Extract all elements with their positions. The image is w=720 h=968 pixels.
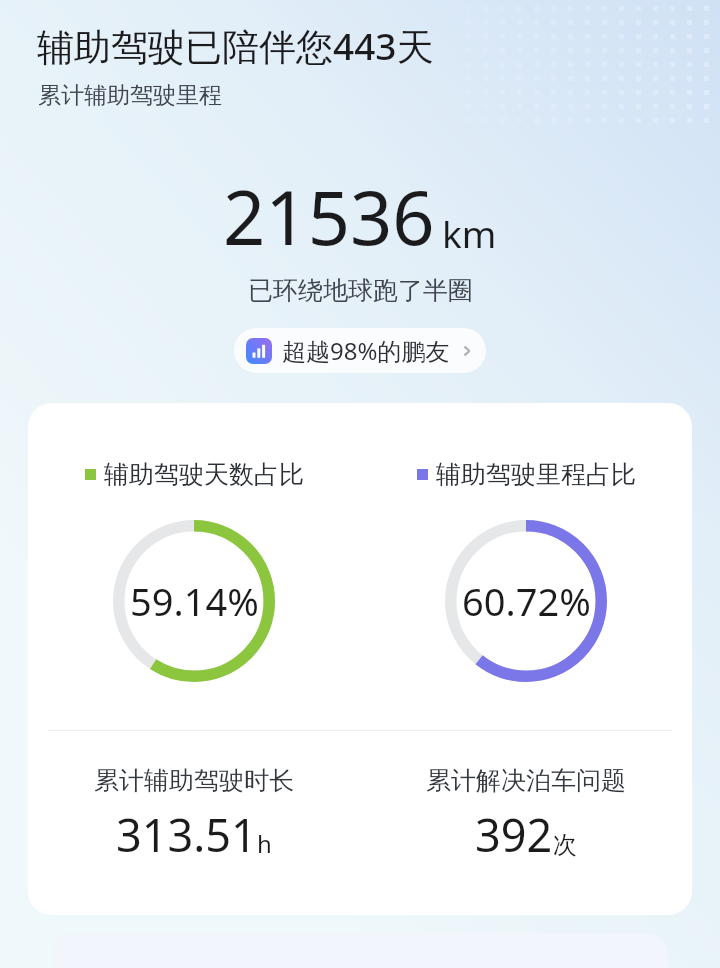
staticText: 60.72%	[462, 575, 591, 627]
staticText: 累计辅助驾驶里程	[38, 81, 222, 110]
staticText: 次	[553, 830, 577, 860]
staticText: 21536	[223, 166, 435, 267]
staticText: 313.51	[116, 804, 257, 865]
staticText: 已环绕地球跑了半圈	[248, 275, 473, 306]
staticText: 辅助驾驶里程占比	[436, 459, 636, 490]
staticText: 超越98%的鹏友	[282, 334, 450, 367]
staticText: h	[257, 827, 272, 860]
staticText: 59.14%	[130, 575, 259, 627]
button[interactable]: 辅助驾驶天数占比	[28, 403, 692, 915]
other: 查看详情	[458, 342, 476, 360]
staticText: 累计解决泊车问题	[426, 765, 626, 796]
staticText: 392	[475, 804, 553, 865]
staticText: 辅助驾驶已陪伴您443天	[37, 20, 434, 71]
staticText: 辅助驾驶天数占比	[104, 459, 304, 490]
staticText: 累计辅助驾驶时长	[94, 765, 294, 796]
staticText: km	[442, 208, 497, 258]
button[interactable]: 超越98%的鹏友	[234, 328, 486, 373]
